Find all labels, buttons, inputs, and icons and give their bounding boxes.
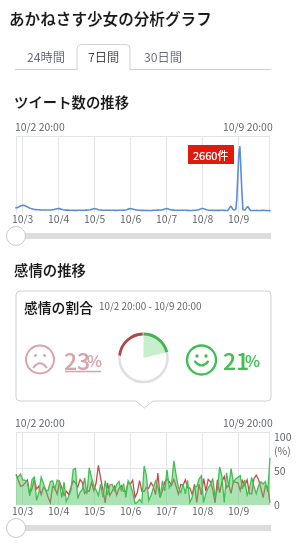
staticText: 10/2 20:00 - 10/9 20:00 — [99, 299, 202, 313]
button[interactable]: 24時間 — [15, 44, 77, 70]
staticText: 10/2 20:00 — [15, 415, 65, 430]
staticText: 7日間 — [88, 48, 120, 66]
staticText: 23 — [64, 343, 91, 375]
staticText: 感情の推移 — [14, 259, 86, 280]
staticText: 10/9 — [228, 503, 250, 516]
staticText: % — [87, 348, 103, 371]
staticText: 10/3 — [12, 211, 34, 224]
staticText: 10/7 — [156, 211, 178, 224]
button[interactable]: 30日間 — [130, 44, 196, 70]
staticText: % — [245, 348, 261, 371]
staticText: 感情の割合 — [24, 297, 93, 317]
staticText: 10/9 20:00 — [223, 119, 273, 134]
staticText: 10/8 — [192, 503, 214, 516]
staticText: あかねさす少女の分析グラフ — [9, 7, 212, 30]
staticText: 10/2 20:00 — [15, 119, 65, 134]
button[interactable]: 7日間 — [77, 44, 130, 70]
staticText: 10/4 — [48, 211, 70, 224]
staticText: 10/9 20:00 — [223, 415, 273, 430]
staticText: 2660件 — [193, 147, 229, 163]
staticText: 30日間 — [144, 48, 182, 66]
staticText: 10/3 — [12, 503, 34, 516]
staticText: 100 — [274, 429, 292, 444]
staticText: (%) — [274, 443, 291, 458]
staticText: 10/5 — [84, 211, 106, 224]
staticText: 21 — [223, 343, 250, 375]
button[interactable]: 期間スライダー — [4, 224, 28, 248]
staticText: 10/8 — [192, 211, 214, 224]
staticText: 10/7 — [156, 503, 178, 516]
staticText: ツイート数の推移 — [14, 91, 130, 112]
button[interactable]: 23 — [64, 343, 104, 375]
staticText: 0 — [274, 497, 280, 512]
staticText: 10/5 — [84, 503, 106, 516]
staticText: 10/9 — [228, 211, 250, 224]
button[interactable]: 期間スライダー — [4, 516, 28, 540]
staticText: 10/6 — [120, 211, 142, 224]
staticText: 50 — [274, 463, 286, 478]
staticText: 10/4 — [48, 503, 70, 516]
staticText: 24時間 — [27, 48, 65, 66]
staticText: 10/6 — [120, 503, 142, 516]
